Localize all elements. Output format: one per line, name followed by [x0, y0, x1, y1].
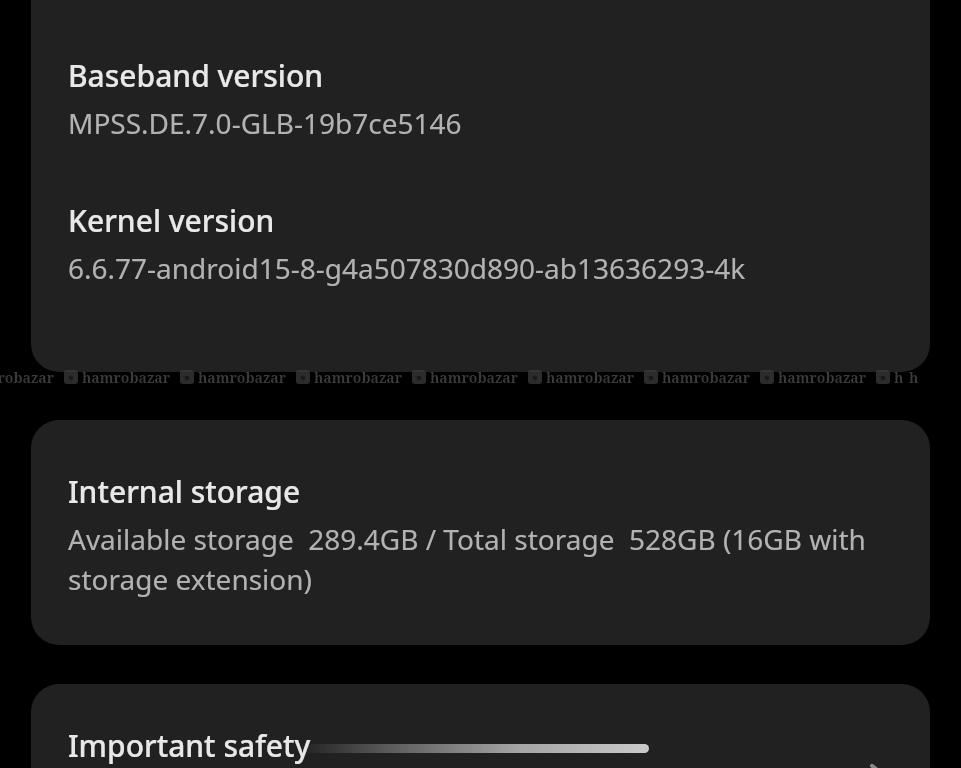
- button[interactable]: Kernel version: [31, 142, 930, 287]
- staticText: hamrobazar: [430, 368, 519, 387]
- staticText: hamrobazar: [778, 368, 867, 387]
- staticText: hamrobazar: [314, 368, 403, 387]
- other: Important safety information: [856, 754, 900, 768]
- staticText: Kernel version: [68, 200, 275, 241]
- staticText: hamrobazar: [662, 368, 751, 387]
- button[interactable]: Important safety information: [31, 684, 930, 768]
- staticText: MPSS.DE.7.0-GLB-19b7ce5146: [68, 104, 462, 142]
- staticText: hamrobazar: [82, 368, 171, 387]
- staticText: Important safety information: [68, 725, 462, 768]
- staticText: Baseband version: [68, 55, 324, 96]
- staticText: 6.6.77-android15-8-g4a507830d890-ab13636…: [68, 249, 746, 287]
- staticText: hamrobazar: [0, 368, 55, 387]
- staticText: Internal storage: [68, 471, 301, 512]
- staticText: hamrobazar: [894, 368, 909, 387]
- button[interactable]: Baseband version: [31, 0, 930, 142]
- staticText: hamrobazar: [546, 368, 635, 387]
- button[interactable]: Internal storage: [31, 420, 930, 599]
- staticText: hamrobazar: [198, 368, 287, 387]
- staticText: Available storage 289.4GB / Total storag…: [68, 520, 906, 599]
